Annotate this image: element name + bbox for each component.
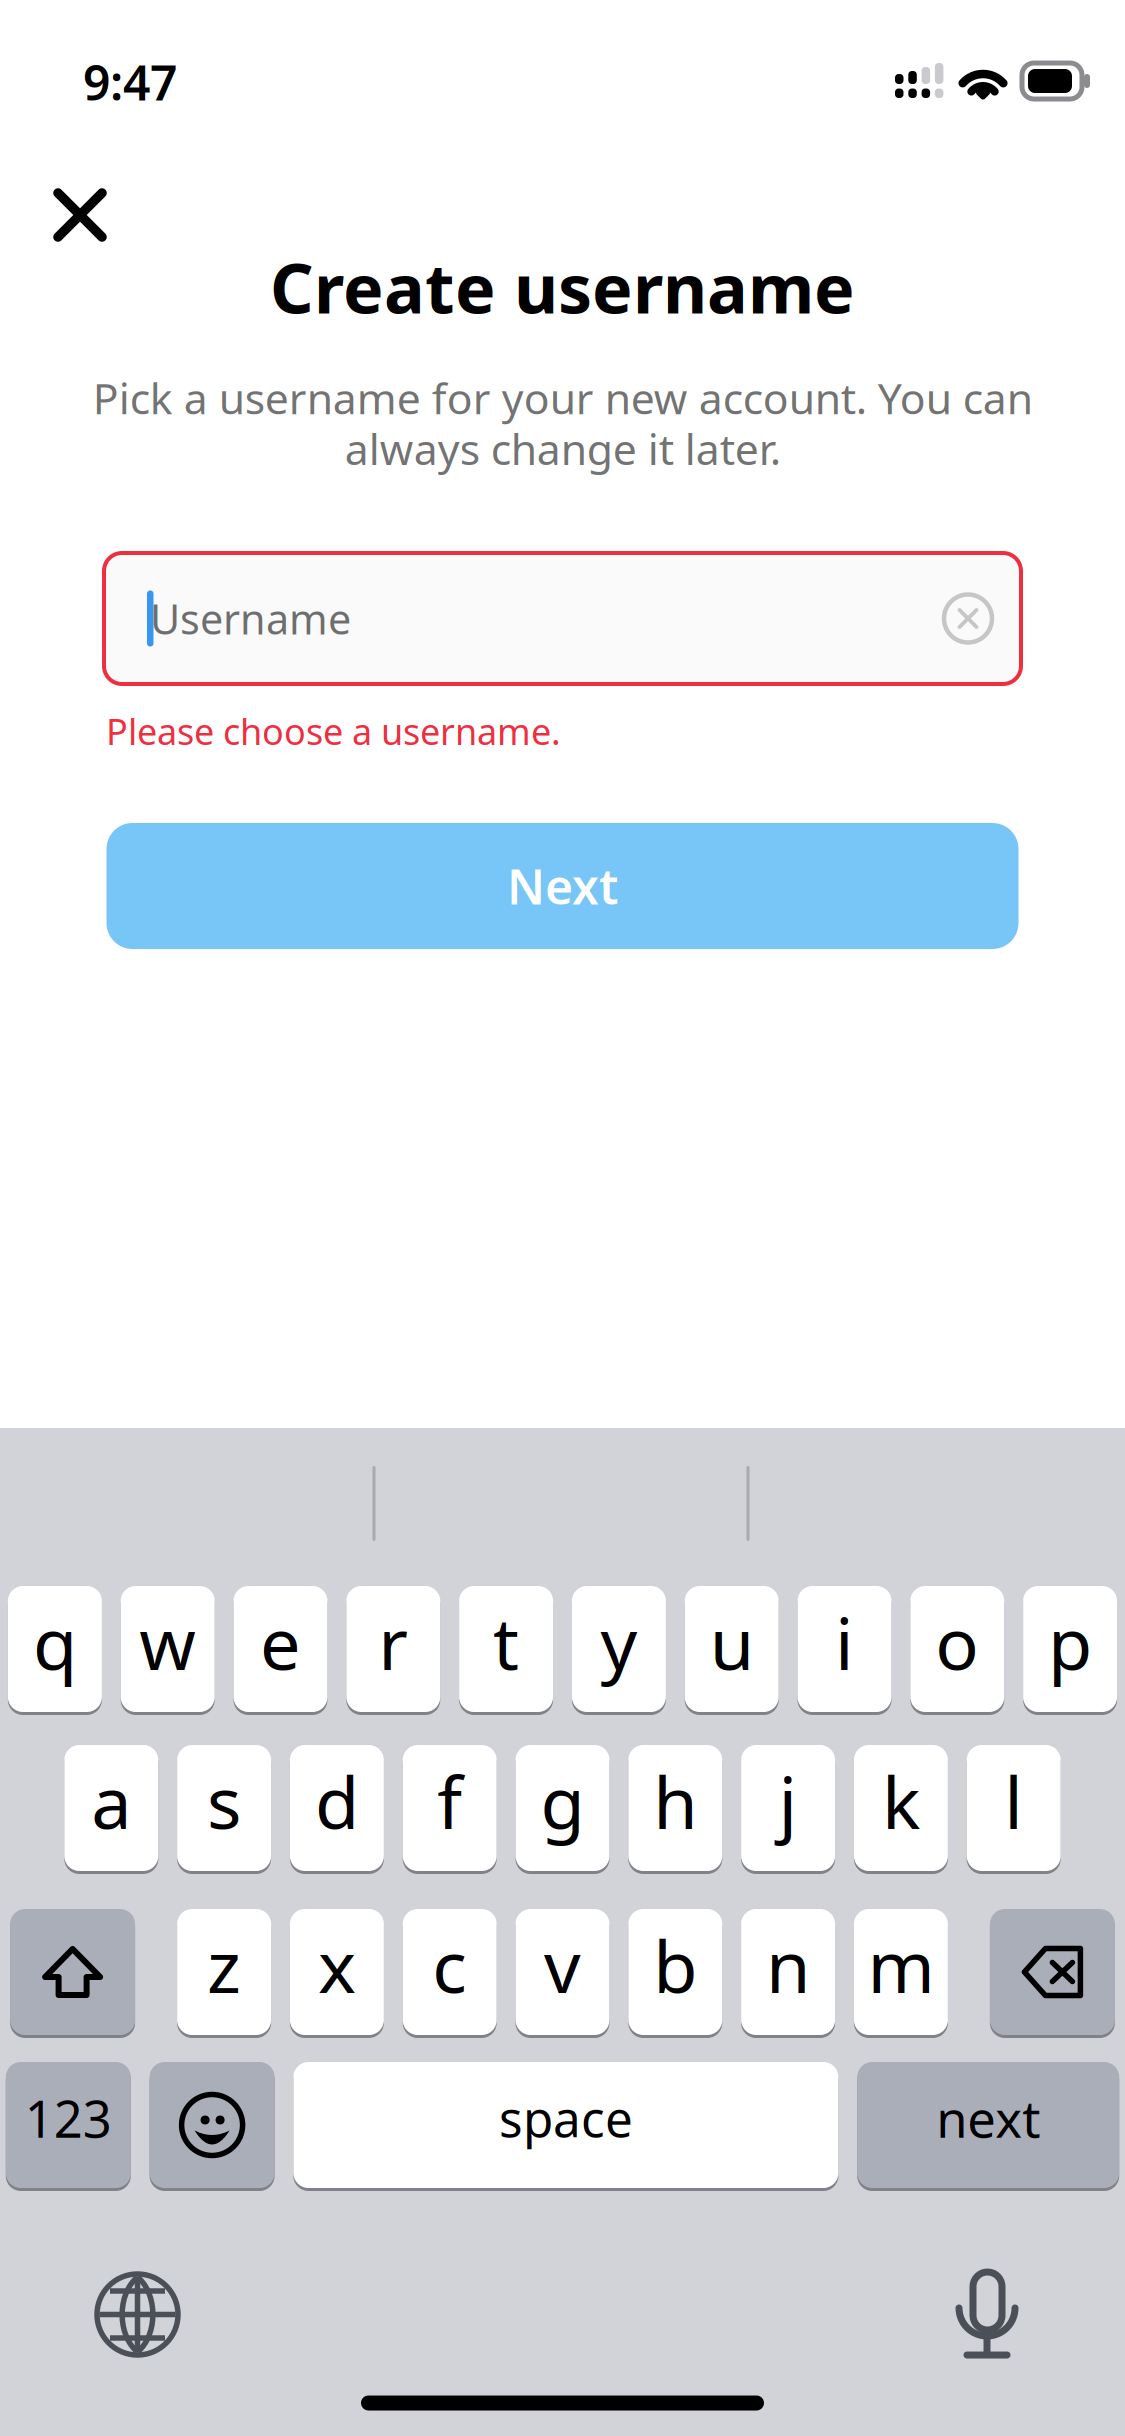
staticText: 123: [25, 2084, 112, 2152]
staticText: Create username: [270, 242, 855, 332]
staticText: Username: [150, 591, 351, 646]
staticText: m: [867, 1917, 934, 2013]
button[interactable]: z: [177, 1907, 271, 2036]
button[interactable]: q: [8, 1584, 102, 1713]
staticText: w: [139, 1594, 196, 1690]
button[interactable]: t: [459, 1584, 553, 1713]
button[interactable]: j: [741, 1743, 835, 1872]
button[interactable]: w: [121, 1584, 215, 1713]
button[interactable]: i: [797, 1584, 891, 1713]
button[interactable]: r: [346, 1584, 440, 1713]
staticText: Pick a username for your new account. Yo…: [92, 369, 1032, 477]
button[interactable]: Delete: [990, 1907, 1115, 2036]
button[interactable]: Emoji: [150, 2060, 275, 2189]
button[interactable]: Dictation: [957, 2272, 1019, 2360]
staticText: y: [600, 1594, 637, 1690]
button[interactable]: p: [1023, 1584, 1117, 1713]
staticText: t: [493, 1594, 519, 1690]
staticText: 9:47: [83, 50, 177, 114]
button[interactable]: c: [403, 1907, 497, 2036]
staticText: r: [378, 1594, 408, 1690]
button[interactable]: v: [515, 1907, 609, 2036]
button[interactable]: d: [290, 1743, 384, 1872]
staticText: b: [653, 1917, 697, 2013]
staticText: g: [540, 1753, 584, 1849]
button[interactable]: Next keyboard: [97, 2274, 179, 2356]
staticText: v: [544, 1917, 581, 2013]
button[interactable]: m: [854, 1907, 948, 2036]
button[interactable]: o: [910, 1584, 1004, 1713]
button[interactable]: space: [293, 2060, 838, 2189]
staticText: q: [33, 1594, 77, 1690]
staticText: h: [653, 1753, 697, 1849]
staticText: Next: [507, 854, 618, 918]
button[interactable]: Clear text: [943, 593, 993, 643]
button[interactable]: g: [515, 1743, 609, 1872]
button[interactable]: Close: [0, 163, 140, 267]
staticText: c: [432, 1917, 467, 2013]
staticText: j: [779, 1753, 798, 1849]
staticText: n: [766, 1917, 810, 2013]
button[interactable]: b: [628, 1907, 722, 2036]
staticText: e: [260, 1594, 301, 1690]
staticText: l: [1004, 1753, 1023, 1849]
staticText: x: [318, 1917, 356, 2013]
staticText: space: [499, 2085, 633, 2151]
button[interactable]: u: [685, 1584, 779, 1713]
staticText: s: [207, 1753, 241, 1849]
staticText: d: [315, 1753, 359, 1849]
staticText: next: [936, 2084, 1040, 2152]
button[interactable]: e: [233, 1584, 327, 1713]
staticText: k: [882, 1753, 920, 1849]
button[interactable]: next: [857, 2060, 1119, 2189]
button[interactable]: h: [628, 1743, 722, 1872]
staticText: a: [91, 1753, 131, 1849]
staticText: i: [835, 1594, 854, 1690]
button[interactable]: y: [572, 1584, 666, 1713]
staticText: u: [710, 1594, 754, 1690]
button[interactable]: f: [403, 1743, 497, 1872]
button[interactable]: k: [854, 1743, 948, 1872]
staticText: z: [207, 1917, 241, 2013]
staticText: Please choose a username.: [106, 707, 561, 755]
button[interactable]: a: [64, 1743, 158, 1872]
staticText: o: [935, 1594, 979, 1690]
button[interactable]: n: [741, 1907, 835, 2036]
button[interactable]: s: [177, 1743, 271, 1872]
button[interactable]: l: [967, 1743, 1061, 1872]
button[interactable]: Next: [106, 823, 1018, 949]
button[interactable]: 123: [6, 2060, 131, 2189]
staticText: f: [437, 1753, 462, 1849]
button[interactable]: Shift: [10, 1907, 135, 2036]
staticText: p: [1048, 1594, 1092, 1690]
button[interactable]: x: [290, 1907, 384, 2036]
